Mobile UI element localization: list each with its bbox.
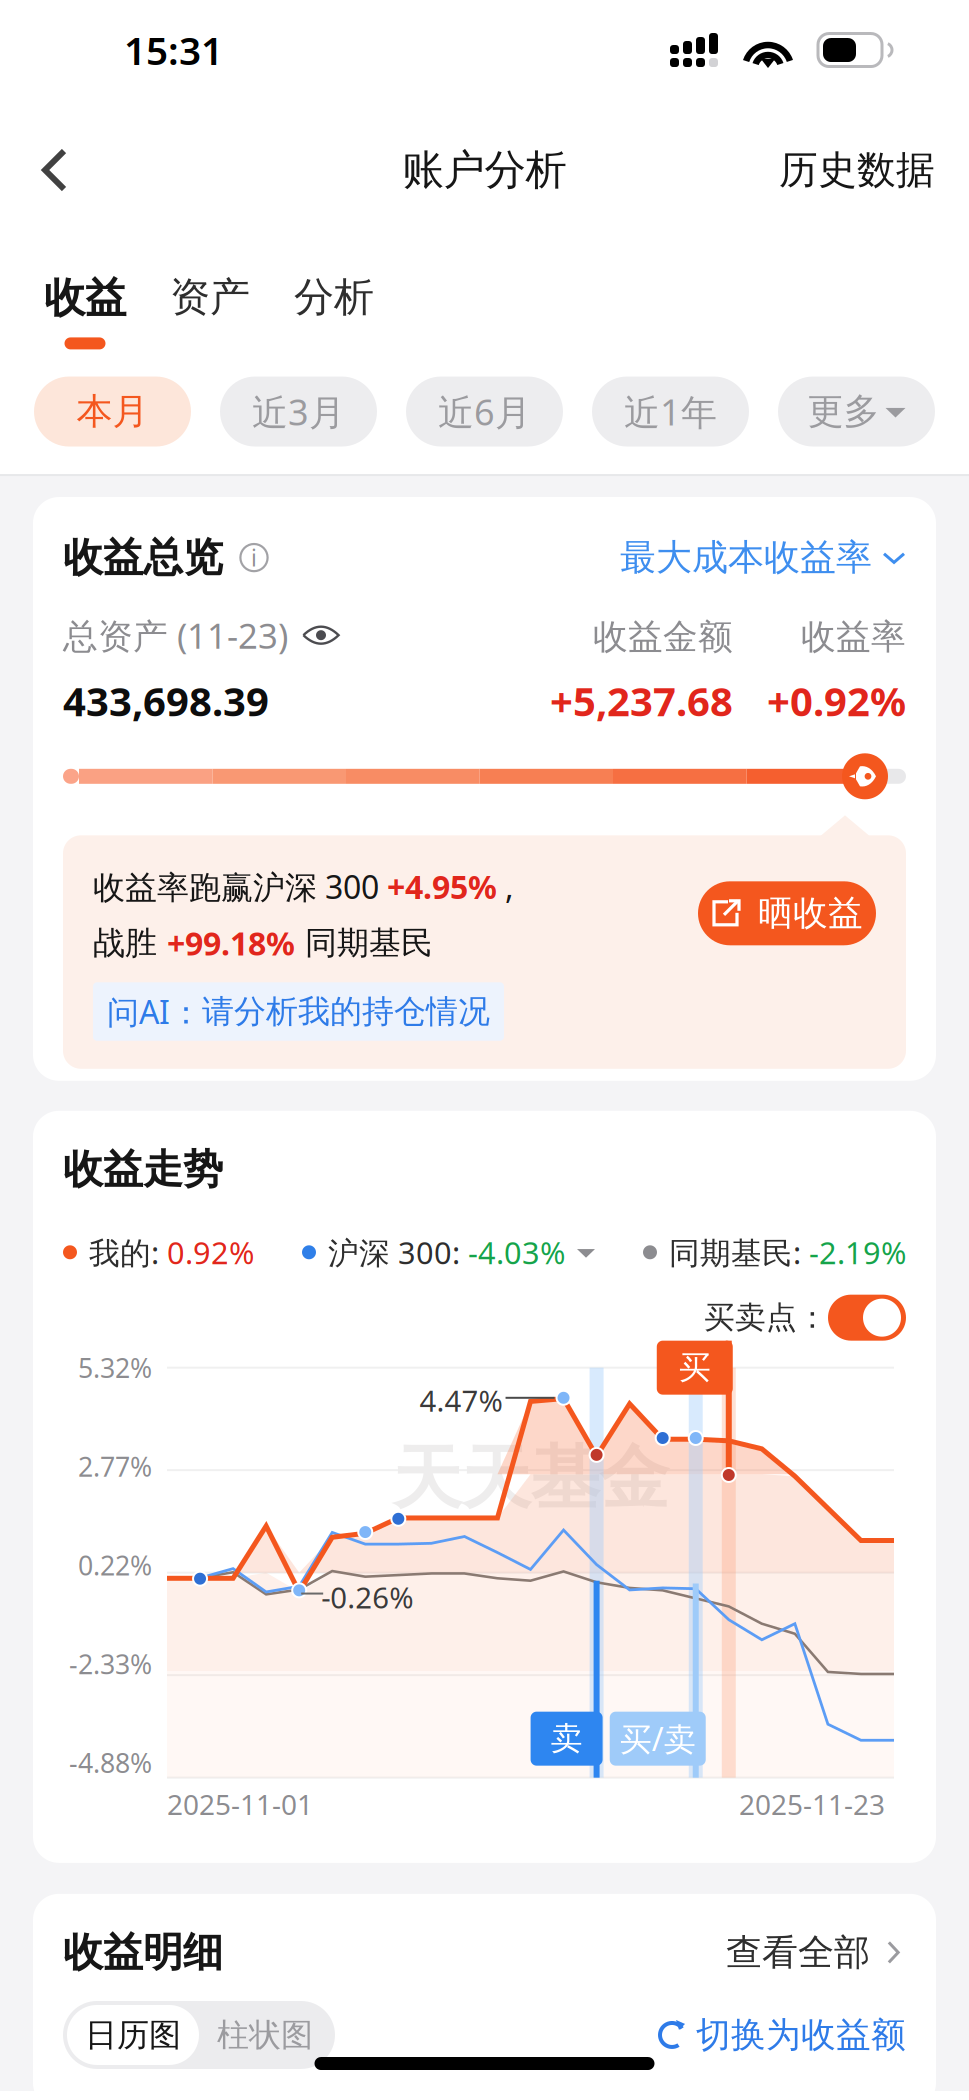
staticText: 买/卖	[620, 1717, 696, 1760]
staticText: 15:31	[124, 24, 223, 76]
staticText: 同期基民	[295, 923, 433, 963]
staticText: 0.22%	[78, 1547, 152, 1583]
staticText: ,	[497, 865, 514, 908]
button[interactable]: 资产	[170, 273, 250, 322]
staticText: 卖	[551, 1719, 583, 1758]
button[interactable]: Back	[40, 122, 124, 218]
staticText: 近3月	[252, 388, 345, 435]
staticText: +0.92%	[767, 674, 906, 727]
staticText: 战胜	[93, 923, 167, 963]
staticText: 收益走势	[63, 1145, 223, 1194]
staticText: 433,698.39	[63, 674, 269, 727]
staticText: 收益	[44, 273, 126, 323]
staticText: 切换为收益额	[696, 2014, 906, 2056]
button[interactable]: 近1年	[592, 376, 749, 446]
button[interactable]: 柱状图	[199, 2005, 331, 2065]
staticText: 收益金额	[593, 616, 733, 658]
staticText: 账户分析	[402, 145, 566, 195]
staticText: 收益率	[801, 616, 906, 658]
staticText: 2025-11-23	[739, 1786, 885, 1823]
staticText: 分析	[294, 273, 374, 322]
staticText: +4.95%	[387, 865, 497, 908]
button[interactable]: 切换为收益额	[656, 2014, 906, 2056]
staticText: 2.77%	[78, 1449, 152, 1484]
staticText: +5,237.68	[550, 674, 733, 727]
staticText: -4.88%	[69, 1745, 152, 1780]
staticText: 0.92%	[167, 1232, 254, 1273]
staticText: 请分析我的持仓情况	[202, 992, 490, 1031]
staticText: -2.19%	[809, 1232, 906, 1273]
staticText: 晒收益	[758, 892, 863, 935]
staticText: 5.32%	[78, 1350, 152, 1385]
button[interactable]: 查看全部	[726, 1930, 906, 1974]
staticText: 收益明细	[63, 1928, 223, 1977]
button[interactable]: 日历图	[67, 2005, 199, 2065]
staticText: 资产	[170, 273, 250, 322]
button[interactable]: Buy sell points toggle	[828, 1295, 906, 1341]
button[interactable]: 历史数据	[779, 146, 935, 194]
staticText: 本月	[76, 389, 148, 434]
staticText: -2.33%	[69, 1646, 152, 1682]
staticText: 近6月	[438, 388, 531, 435]
staticText: 更多	[807, 389, 879, 434]
staticText: 同期基民:	[669, 1232, 809, 1273]
staticText: 2025-11-01	[167, 1786, 313, 1823]
staticText: 问AI：	[107, 990, 202, 1033]
staticText: 历史数据	[779, 146, 935, 194]
staticText: -0.26%	[321, 1578, 413, 1617]
staticText: 天天基金	[392, 1436, 668, 1521]
staticText: 日历图	[85, 2015, 181, 2055]
staticText: 近1年	[624, 388, 717, 435]
button[interactable]: 近6月	[406, 376, 563, 446]
staticText: 收益总览	[63, 533, 223, 582]
button[interactable]: 晒收益	[698, 881, 876, 945]
button[interactable]: 分析	[294, 273, 374, 322]
staticText: 买卖点：	[704, 1299, 828, 1336]
button[interactable]: 最大成本收益率	[620, 535, 906, 580]
button[interactable]: 近3月	[220, 376, 377, 446]
staticText: 收益率跑赢沪深 300	[93, 865, 387, 908]
staticText: +99.18%	[167, 922, 295, 964]
staticText: 查看全部	[726, 1930, 870, 1974]
staticText: 买	[679, 1348, 711, 1387]
button[interactable]: 更多	[778, 376, 935, 446]
staticText: 柱状图	[217, 2015, 313, 2055]
staticText: 沪深 300:	[328, 1232, 468, 1273]
button[interactable]: 问AI：	[93, 982, 504, 1041]
staticText: 最大成本收益率	[620, 535, 872, 580]
staticText: 4.47%	[419, 1381, 502, 1420]
button[interactable]: 收益	[44, 273, 126, 349]
staticText: 我的:	[89, 1232, 167, 1273]
staticText: 总资产 (11-23)	[63, 612, 288, 658]
staticText: -4.03%	[468, 1232, 565, 1273]
staticText: i	[251, 542, 257, 573]
button[interactable]: 本月	[34, 376, 191, 446]
